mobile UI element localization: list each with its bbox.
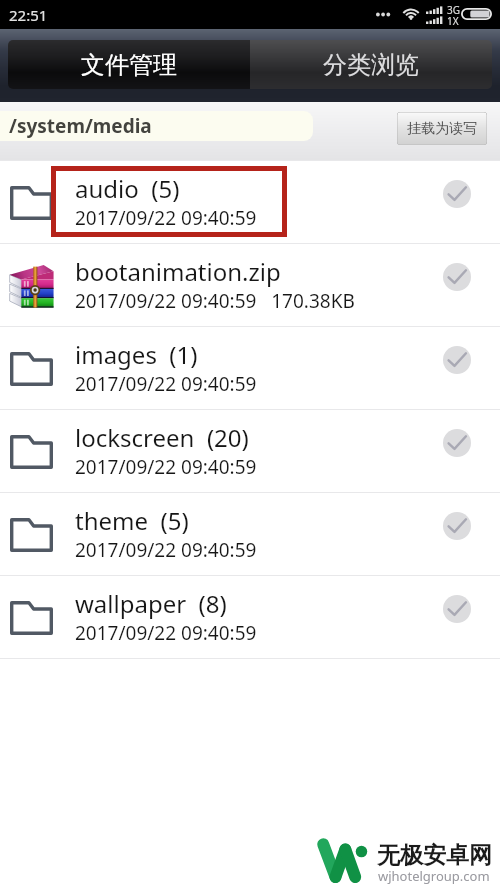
button[interactable]: wallpaper (8) bbox=[0, 576, 500, 659]
button[interactable]: /system/media bbox=[0, 111, 313, 141]
staticText: 分类浏览 bbox=[323, 50, 419, 80]
staticText: 2017/09/22 09:40:59 170.38KB bbox=[75, 288, 355, 314]
staticText: wjhotelgroup.com bbox=[378, 867, 490, 885]
button[interactable]: 文件管理 bbox=[8, 40, 250, 89]
staticText: /system/media bbox=[9, 113, 152, 139]
button[interactable]: theme (5) bbox=[0, 493, 500, 576]
button[interactable]: bootanimation.zip bbox=[0, 244, 500, 327]
staticText: 2017/09/22 09:40:59 bbox=[75, 454, 257, 480]
staticText: 3G bbox=[447, 3, 460, 17]
button[interactable]: lockscreen (20) bbox=[0, 410, 500, 493]
button[interactable]: Select bbox=[443, 263, 471, 291]
button[interactable]: audio (5) bbox=[0, 161, 500, 244]
button[interactable]: 挂载为读写 bbox=[397, 112, 487, 145]
staticText: 2017/09/22 09:40:59 bbox=[75, 620, 257, 646]
staticText: 22:51 bbox=[9, 5, 48, 25]
button[interactable]: Select bbox=[443, 429, 471, 457]
staticText: bootanimation.zip bbox=[75, 255, 281, 288]
staticText: 2017/09/22 09:40:59 bbox=[75, 371, 257, 397]
staticText: 2017/09/22 09:40:59 bbox=[75, 205, 257, 231]
button[interactable]: Select bbox=[443, 512, 471, 540]
staticText: 文件管理 bbox=[81, 50, 177, 80]
staticText: wallpaper (8) bbox=[75, 587, 227, 620]
button[interactable]: 分类浏览 bbox=[250, 40, 492, 89]
staticText: 2017/09/22 09:40:59 bbox=[75, 537, 257, 563]
button[interactable]: images (1) bbox=[0, 327, 500, 410]
staticText: audio (5) bbox=[75, 172, 180, 205]
staticText: 无极安卓网 bbox=[377, 841, 492, 870]
staticText: 挂载为读写 bbox=[407, 120, 477, 138]
staticText: theme (5) bbox=[75, 504, 189, 537]
button[interactable]: Select bbox=[443, 595, 471, 623]
staticText: 1X bbox=[447, 14, 459, 28]
button[interactable]: Select bbox=[443, 180, 471, 208]
staticText: lockscreen (20) bbox=[75, 421, 249, 454]
staticText: images (1) bbox=[75, 338, 198, 371]
button[interactable]: Select bbox=[443, 346, 471, 374]
